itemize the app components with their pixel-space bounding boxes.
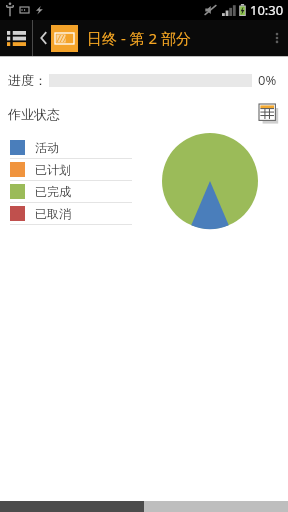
button[interactable]: 活动 <box>10 137 132 158</box>
staticText: 日终 - 第 2 部分 <box>87 28 192 48</box>
staticText: 作业状态 <box>8 106 60 122</box>
staticText: 已完成 <box>35 184 71 199</box>
staticText: 已计划 <box>35 162 71 177</box>
button[interactable]: Back <box>37 20 51 56</box>
staticText: 0% <box>258 71 280 89</box>
button[interactable]: 已完成 <box>10 181 132 202</box>
button[interactable]: More options <box>266 20 288 56</box>
button[interactable]: 已取消 <box>10 203 132 224</box>
staticText: 已取消 <box>35 206 71 221</box>
button[interactable]: Show table <box>258 103 280 125</box>
button[interactable]: 已计划 <box>10 159 132 180</box>
staticText: 活动 <box>35 140 59 155</box>
staticText: 10:30 <box>250 1 284 19</box>
button[interactable]: Menu <box>0 20 32 56</box>
staticText: 进度： <box>8 72 47 88</box>
